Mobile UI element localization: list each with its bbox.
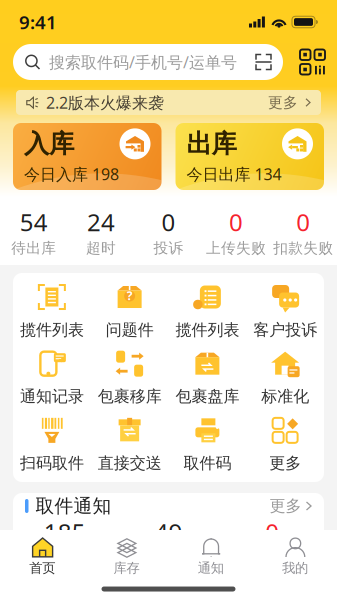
staticText: 今日出库 134 [186,163,281,185]
staticText: 入库 [24,128,74,159]
button[interactable]: 49 [117,516,220,567]
staticText: 我的 [282,560,308,576]
staticText: 问题件 [106,320,154,340]
button[interactable]: 入库 [13,123,161,190]
staticText: 更多 [269,453,301,473]
staticText: 标准化 [261,387,309,406]
staticText: 出库 [186,128,236,159]
staticText: 首页 [29,560,55,576]
button[interactable]: 取件码 [168,415,246,473]
button[interactable]: 客户投诉 [246,282,324,340]
staticText: 待通知 [42,549,87,567]
button[interactable]: 我的 [253,532,337,576]
staticText: 0 [229,206,243,238]
button[interactable]: 出库 [175,123,324,190]
staticText: 0 [265,516,279,548]
button[interactable]: 包裹移库 [91,349,169,406]
staticText: 超时 [86,239,116,257]
button[interactable]: 揽件列表 [168,282,246,340]
button[interactable]: 0 [270,206,337,257]
staticText: 0 [296,206,310,238]
button[interactable]: 2.2版本火爆来袭 [16,90,321,115]
button[interactable]: 54 [0,206,67,257]
staticText: 库存 [113,560,139,576]
staticText: 取件码 [183,453,231,473]
staticText: 今日入库 198 [24,163,119,185]
staticText: 取件通知 [35,494,111,517]
button[interactable]: 标准化 [246,349,324,406]
staticText: 投诉 [153,239,183,257]
button[interactable]: 更多 [269,496,312,516]
button[interactable]: 扫码取件 [13,415,91,473]
button[interactable]: 24 [67,206,135,257]
staticText: 54 [20,206,48,238]
button[interactable]: 更多 [246,415,324,473]
staticText: 更多 [269,496,301,516]
button[interactable]: 扫一扫 [300,49,325,74]
button[interactable]: 0 [202,206,270,257]
button[interactable]: 包裹盘库 [168,349,246,406]
staticText: 揽件列表 [175,320,239,340]
button[interactable]: 直接交送 [91,415,169,473]
staticText: 包裹移库 [98,387,162,406]
button[interactable]: 首页 [0,532,84,576]
staticText: 扣款失败 [273,239,333,257]
staticText: 2.2版本火爆来袭 [46,92,164,113]
button[interactable]: 185 [13,516,117,567]
staticText: 49 [154,516,182,548]
staticText: 搜索取件码/手机号/运单号 [49,51,237,73]
staticText: 扫码取件 [20,453,84,473]
staticText: 24 [87,206,115,238]
button[interactable]: 搜索取件码/手机号/运单号 [13,44,283,80]
staticText: 通知记录 [20,387,84,406]
staticText: 客户投诉 [253,320,317,340]
staticText: 直接交送 [98,453,162,473]
staticText: 0 [161,206,175,238]
staticText: 更多 [268,93,298,111]
button[interactable]: ? [91,282,169,340]
staticText: 9:41 [19,10,57,34]
button[interactable]: 0 [220,516,324,567]
button[interactable]: 0 [135,206,202,257]
staticText: 通知 [198,560,224,576]
staticText: 包裹盘库 [175,387,239,406]
staticText: 上传失败 [206,239,266,257]
staticText: 待出库 [11,239,56,257]
button[interactable]: 通知 [168,532,253,576]
button[interactable]: 揽件列表 [13,282,91,340]
button[interactable]: 库存 [84,532,168,576]
button[interactable]: 通知记录 [13,349,91,406]
staticText: 185 [44,516,86,548]
staticText: 揽件列表 [20,320,84,340]
staticText: 通知失败 [242,549,302,567]
staticText: ? [127,287,133,303]
